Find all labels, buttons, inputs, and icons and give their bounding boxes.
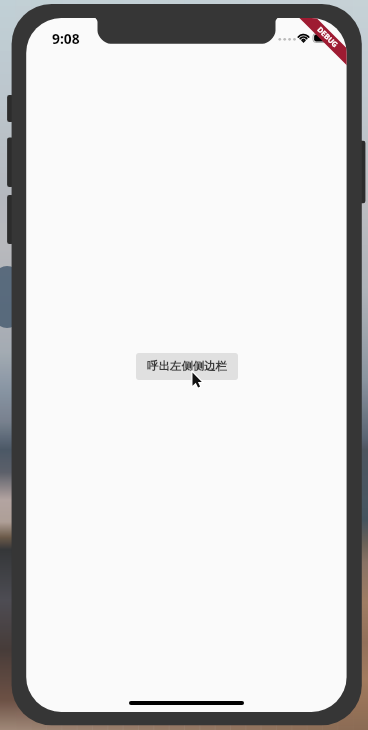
staticText: 呼出左侧侧边栏 xyxy=(147,359,227,373)
button[interactable]: 呼出左侧侧边栏 xyxy=(136,353,238,380)
staticText: 9:08 xyxy=(52,29,80,48)
staticText: DEBUG xyxy=(315,24,341,50)
